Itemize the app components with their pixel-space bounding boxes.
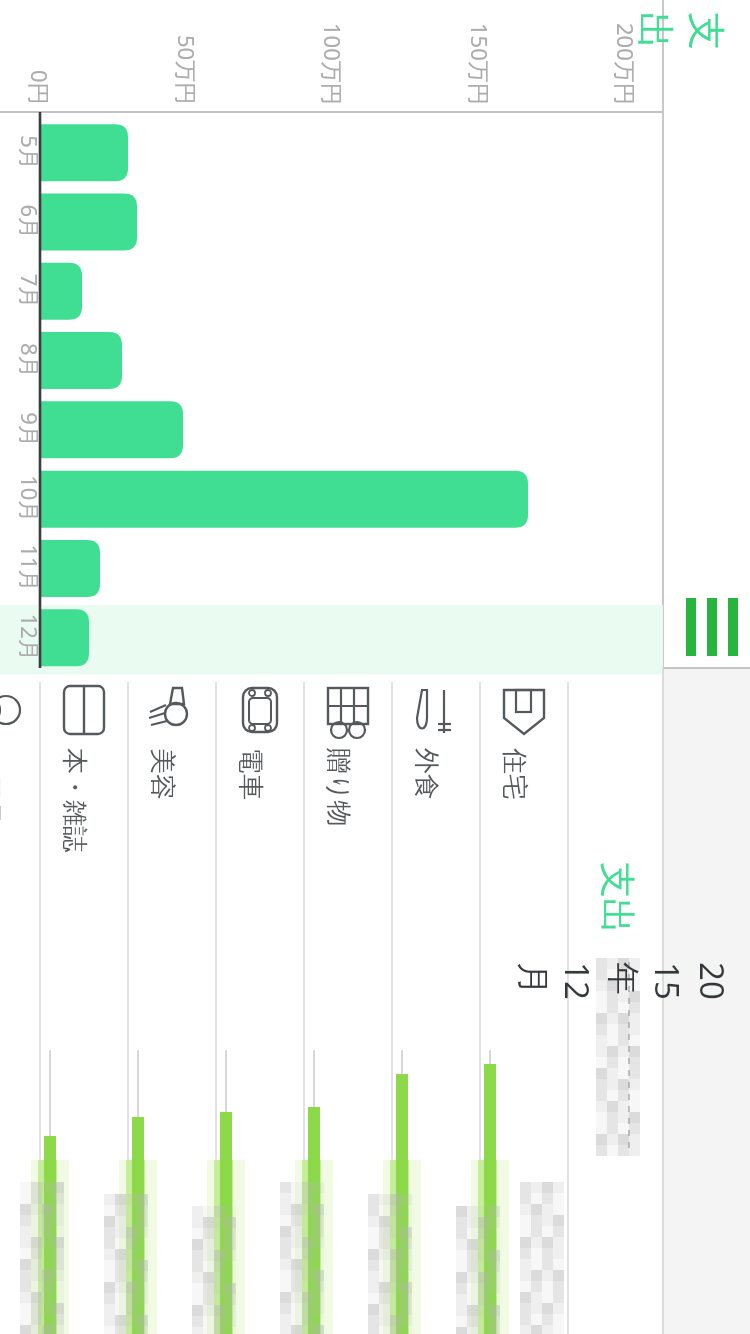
- button[interactable]: Monthly expense chart: [0, 0, 750, 1334]
